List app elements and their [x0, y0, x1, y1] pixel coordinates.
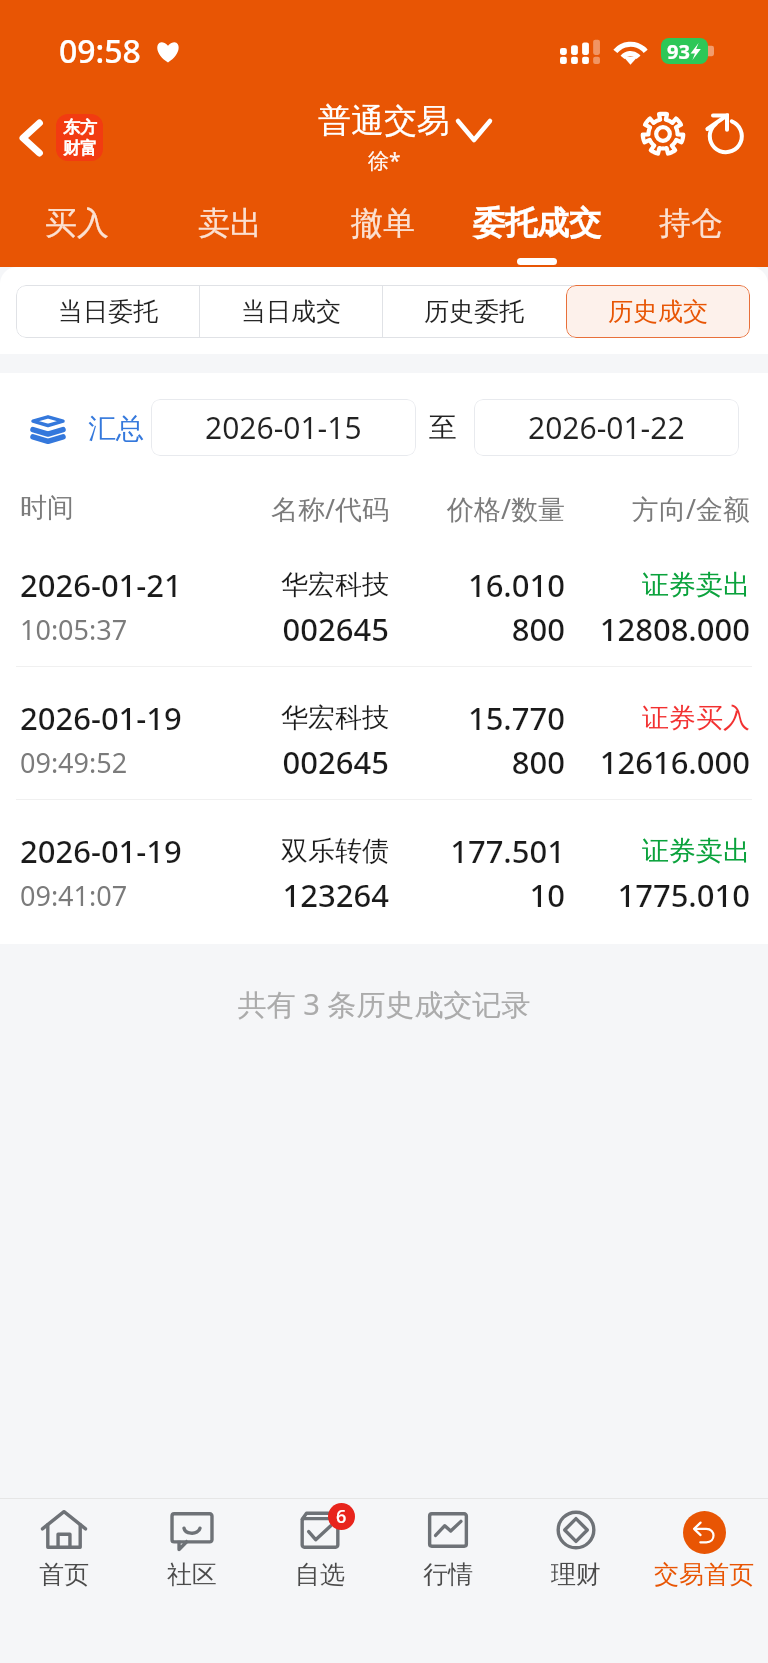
button[interactable]: 2026-01-19 — [0, 800, 768, 933]
staticText: 177.501 — [389, 830, 565, 872]
staticText: 首页 — [39, 1559, 89, 1590]
staticText: 证券卖出 — [565, 834, 750, 868]
staticText: 2026-01-21 — [20, 564, 196, 606]
button[interactable]: Back — [0, 104, 111, 171]
button[interactable]: 普通交易 — [318, 100, 450, 175]
staticText: 东方 — [63, 117, 97, 138]
staticText: 002645 — [196, 608, 389, 650]
staticText: 2026-01-15 — [205, 407, 362, 448]
button[interactable]: 首页 — [0, 1499, 128, 1663]
staticText: 2026-01-19 — [20, 697, 196, 739]
staticText: 16.010 — [389, 564, 565, 606]
staticText: 汇总 — [88, 411, 144, 446]
staticText: 历史委托 — [424, 296, 524, 327]
staticText: 当日委托 — [58, 296, 158, 327]
staticText: 普通交易 — [318, 100, 450, 142]
staticText: 名称/代码 — [196, 490, 389, 527]
staticText: 12616.000 — [565, 741, 750, 783]
staticText: 行情 — [423, 1559, 473, 1590]
staticText: 买入 — [45, 203, 109, 243]
button[interactable]: 2026-01-22 — [474, 399, 739, 456]
staticText: 自选 — [295, 1559, 345, 1590]
staticText: 方向/金额 — [565, 490, 750, 527]
staticText: 800 — [389, 608, 565, 650]
button[interactable]: 委托成交 — [460, 186, 614, 267]
button[interactable]: 买入 — [0, 186, 153, 267]
staticText: 09:58 — [59, 29, 141, 73]
button[interactable]: 社区 — [128, 1499, 256, 1663]
button[interactable]: 撤单 — [306, 186, 460, 267]
staticText: 时间 — [20, 491, 196, 525]
staticText: 123264 — [196, 874, 389, 916]
staticText: 委托成交 — [473, 203, 601, 243]
staticText: 800 — [389, 741, 565, 783]
button[interactable]: Settings — [631, 102, 695, 166]
staticText: 撤单 — [351, 203, 415, 243]
staticText: 09:49:52 — [20, 744, 196, 781]
staticText: 卖出 — [198, 203, 262, 243]
staticText: 至 — [429, 410, 457, 445]
staticText: 价格/数量 — [389, 490, 565, 527]
staticText: 证券买入 — [565, 701, 750, 735]
staticText: 证券卖出 — [565, 568, 750, 602]
button[interactable]: 行情 — [384, 1499, 512, 1663]
button[interactable]: 卖出 — [153, 186, 306, 267]
staticText: 09:41:07 — [20, 877, 196, 914]
button[interactable]: 6 — [256, 1499, 384, 1663]
button[interactable]: 理财 — [512, 1499, 640, 1663]
staticText: 历史成交 — [608, 296, 708, 327]
staticText: 华宏科技 — [196, 568, 389, 602]
staticText: 历史成交 — [608, 296, 708, 327]
staticText: 6 — [336, 1504, 347, 1529]
button[interactable]: 2026-01-15 — [151, 399, 416, 456]
staticText: 华宏科技 — [196, 701, 389, 735]
button[interactable]: 2026-01-19 — [0, 667, 768, 800]
staticText: 1775.010 — [565, 874, 750, 916]
staticText: 徐* — [368, 146, 401, 175]
staticText: 12808.000 — [565, 608, 750, 650]
button[interactable]: 汇总 — [32, 411, 144, 446]
button[interactable]: 2026-01-21 — [0, 534, 768, 667]
staticText: 15.770 — [389, 697, 565, 739]
staticText: 理财 — [551, 1559, 601, 1590]
staticText: 2026-01-22 — [528, 407, 685, 448]
staticText: 10 — [389, 874, 565, 916]
button[interactable]: 当日成交 — [199, 285, 382, 338]
staticText: 93 — [667, 38, 690, 64]
button[interactable]: 当日委托 — [16, 285, 199, 338]
button[interactable]: 交易首页 — [640, 1499, 768, 1663]
staticText: 社区 — [167, 1559, 217, 1590]
button[interactable]: 持仓 — [614, 186, 768, 267]
button[interactable]: 历史委托 — [382, 285, 566, 338]
staticText: 双乐转债 — [196, 834, 389, 868]
staticText: 交易首页 — [654, 1559, 754, 1590]
staticText: 共有 3 条历史成交记录 — [0, 984, 768, 1024]
staticText: 财富 — [63, 138, 97, 159]
button[interactable]: 历史成交 — [566, 285, 750, 338]
staticText: 持仓 — [659, 203, 723, 243]
staticText: 002645 — [196, 741, 389, 783]
staticText: 当日成交 — [241, 296, 341, 327]
staticText: 2026-01-19 — [20, 830, 196, 872]
button[interactable]: Refresh — [694, 102, 756, 164]
staticText: 10:05:37 — [20, 611, 196, 648]
